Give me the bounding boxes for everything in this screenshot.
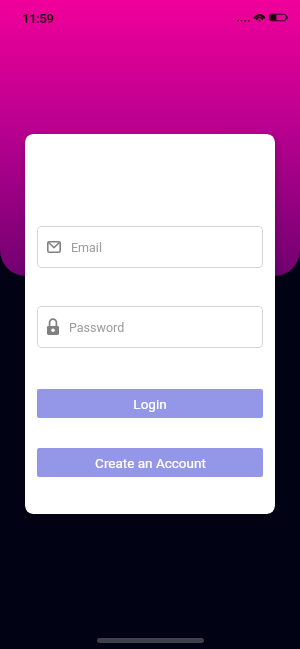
button[interactable]: Login xyxy=(37,389,263,418)
staticText: Create an Account xyxy=(95,455,206,471)
button[interactable]: Email xyxy=(37,226,263,268)
staticText: Email xyxy=(71,240,102,255)
staticText: Login xyxy=(133,396,167,412)
button[interactable]: Password xyxy=(37,306,263,348)
staticText: 11:59 xyxy=(22,10,54,26)
staticText: Password xyxy=(69,320,125,335)
button[interactable]: Create an Account xyxy=(37,448,263,477)
